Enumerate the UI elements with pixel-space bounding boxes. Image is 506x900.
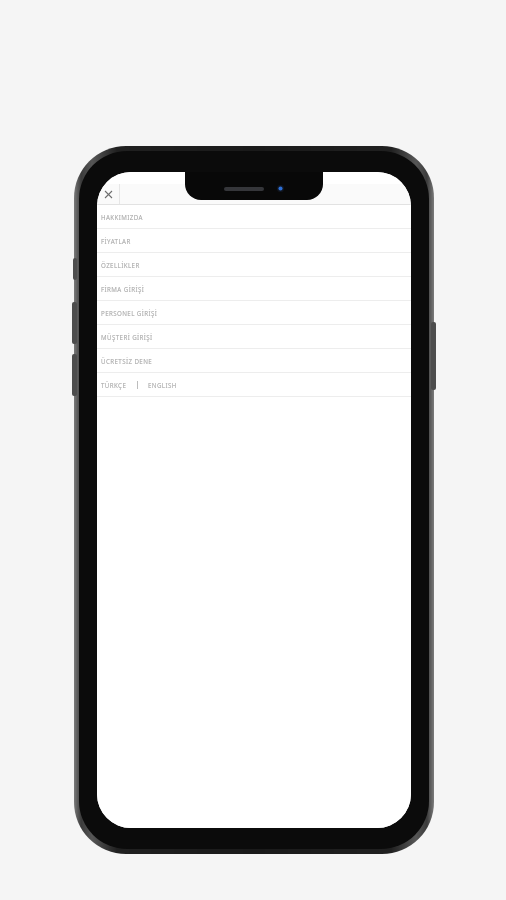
button[interactable]: ENGLISH [148, 381, 177, 389]
staticText: ÖZELLİKLER [101, 261, 140, 269]
button[interactable]: Kapat [97, 184, 119, 205]
button[interactable]: MÜŞTERİ GİRİŞİ [97, 325, 411, 349]
button[interactable]: TÜRKÇE [101, 381, 127, 389]
staticText: PERSONEL GİRİŞİ [101, 309, 158, 317]
staticText: FİRMA GİRİŞİ [101, 285, 145, 293]
button[interactable]: ÖZELLİKLER [97, 253, 411, 277]
staticText: TÜRKÇE [101, 381, 127, 389]
button[interactable]: HAKKIMIZDA [97, 205, 411, 229]
button[interactable]: Geri [97, 184, 411, 205]
button[interactable]: ÜCRETSİZ DENE [97, 349, 411, 373]
staticText: ÜCRETSİZ DENE [101, 357, 153, 365]
button[interactable]: FİYATLAR [97, 229, 411, 253]
staticText: FİYATLAR [101, 237, 131, 245]
staticText: HAKKIMIZDA [101, 213, 143, 221]
button[interactable]: PERSONEL GİRİŞİ [97, 301, 411, 325]
staticText: MÜŞTERİ GİRİŞİ [101, 333, 153, 341]
staticText: Geri [246, 189, 263, 201]
staticText: ENGLISH [148, 381, 177, 389]
button[interactable]: FİRMA GİRİŞİ [97, 277, 411, 301]
